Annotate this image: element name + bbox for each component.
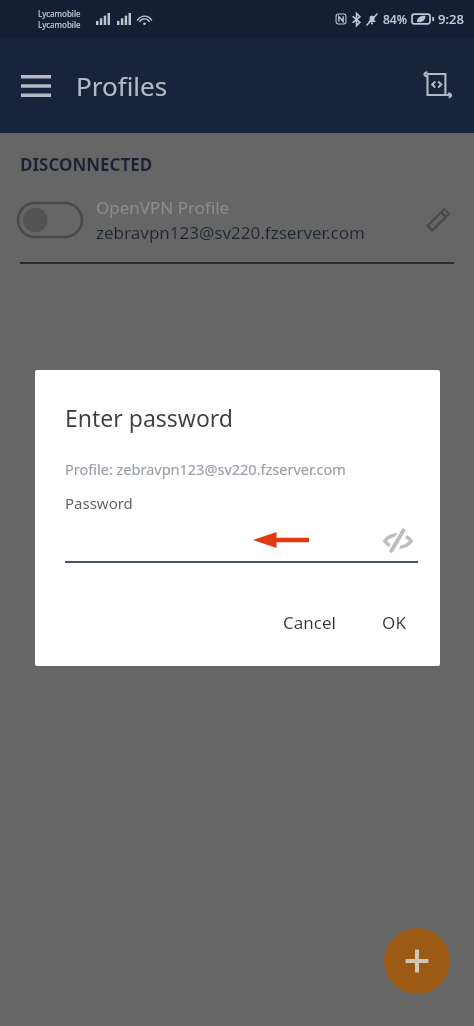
staticText: OK [382, 611, 406, 634]
button[interactable]: Add profile [384, 928, 450, 994]
staticText: Password [65, 493, 133, 513]
staticText: zebravpn123@sv220.fzserver.com [96, 221, 365, 244]
button[interactable]: Open navigation drawer [10, 60, 62, 112]
staticText: Profile: zebravpn123@sv220.fzserver.com [65, 459, 346, 479]
staticText: Cancel [283, 611, 336, 634]
staticText: Enter password [65, 402, 234, 433]
staticText: 84% [383, 11, 407, 27]
staticText: Profiles [76, 68, 168, 103]
staticText: 9:28 [438, 10, 464, 28]
button[interactable]: Connect profile [0, 190, 474, 250]
button[interactable]: Cancel [271, 603, 348, 642]
button[interactable]: Connect profile [18, 203, 82, 237]
button[interactable]: Import profile from file [412, 61, 462, 111]
staticText: OpenVPN Profile [96, 196, 230, 219]
staticText: DISCONNECTED [20, 153, 153, 176]
button[interactable]: Show password [378, 521, 418, 561]
staticText: Lycamobile [38, 19, 81, 30]
button[interactable]: Edit profile [416, 198, 460, 242]
button[interactable]: OK [370, 603, 418, 642]
staticText: Lycamobile [38, 8, 81, 19]
